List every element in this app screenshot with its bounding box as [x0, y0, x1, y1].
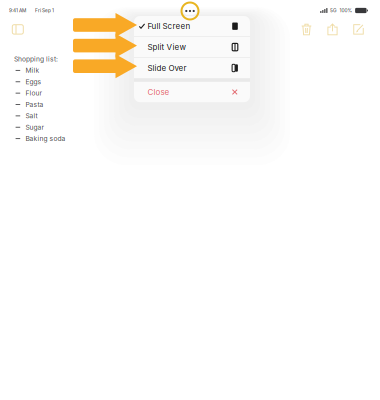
- staticText: Eggs: [26, 78, 42, 86]
- staticText: Pasta: [26, 100, 44, 109]
- staticText: Baking soda: [26, 135, 66, 143]
- staticText: Sugar: [26, 123, 45, 131]
- button[interactable]: Slide Over: [134, 58, 250, 78]
- button[interactable]: Delete: [298, 21, 314, 37]
- staticText: Flour: [26, 89, 43, 97]
- staticText: 5G: [330, 8, 337, 13]
- staticText: Salt: [26, 112, 38, 120]
- staticText: Split View: [147, 42, 186, 52]
- button[interactable]: Full Screen: [134, 16, 250, 36]
- staticText: 9:41 AM: [9, 8, 26, 13]
- button[interactable]: Close: [134, 82, 250, 102]
- staticText: Slide Over: [147, 63, 186, 73]
- staticText: 100%: [340, 8, 353, 13]
- button[interactable]: Split View: [134, 37, 250, 57]
- staticText: Fri Sep 1: [35, 8, 54, 13]
- button[interactable]: Multitasking options: [180, 1, 200, 21]
- staticText: Shopping list:: [14, 55, 58, 63]
- button[interactable]: Show Sidebar: [9, 21, 27, 37]
- button[interactable]: Share: [324, 21, 340, 37]
- staticText: Close: [147, 87, 169, 97]
- staticText: Milk: [26, 66, 40, 74]
- button[interactable]: Compose: [350, 21, 366, 37]
- staticText: Full Screen: [147, 21, 190, 31]
